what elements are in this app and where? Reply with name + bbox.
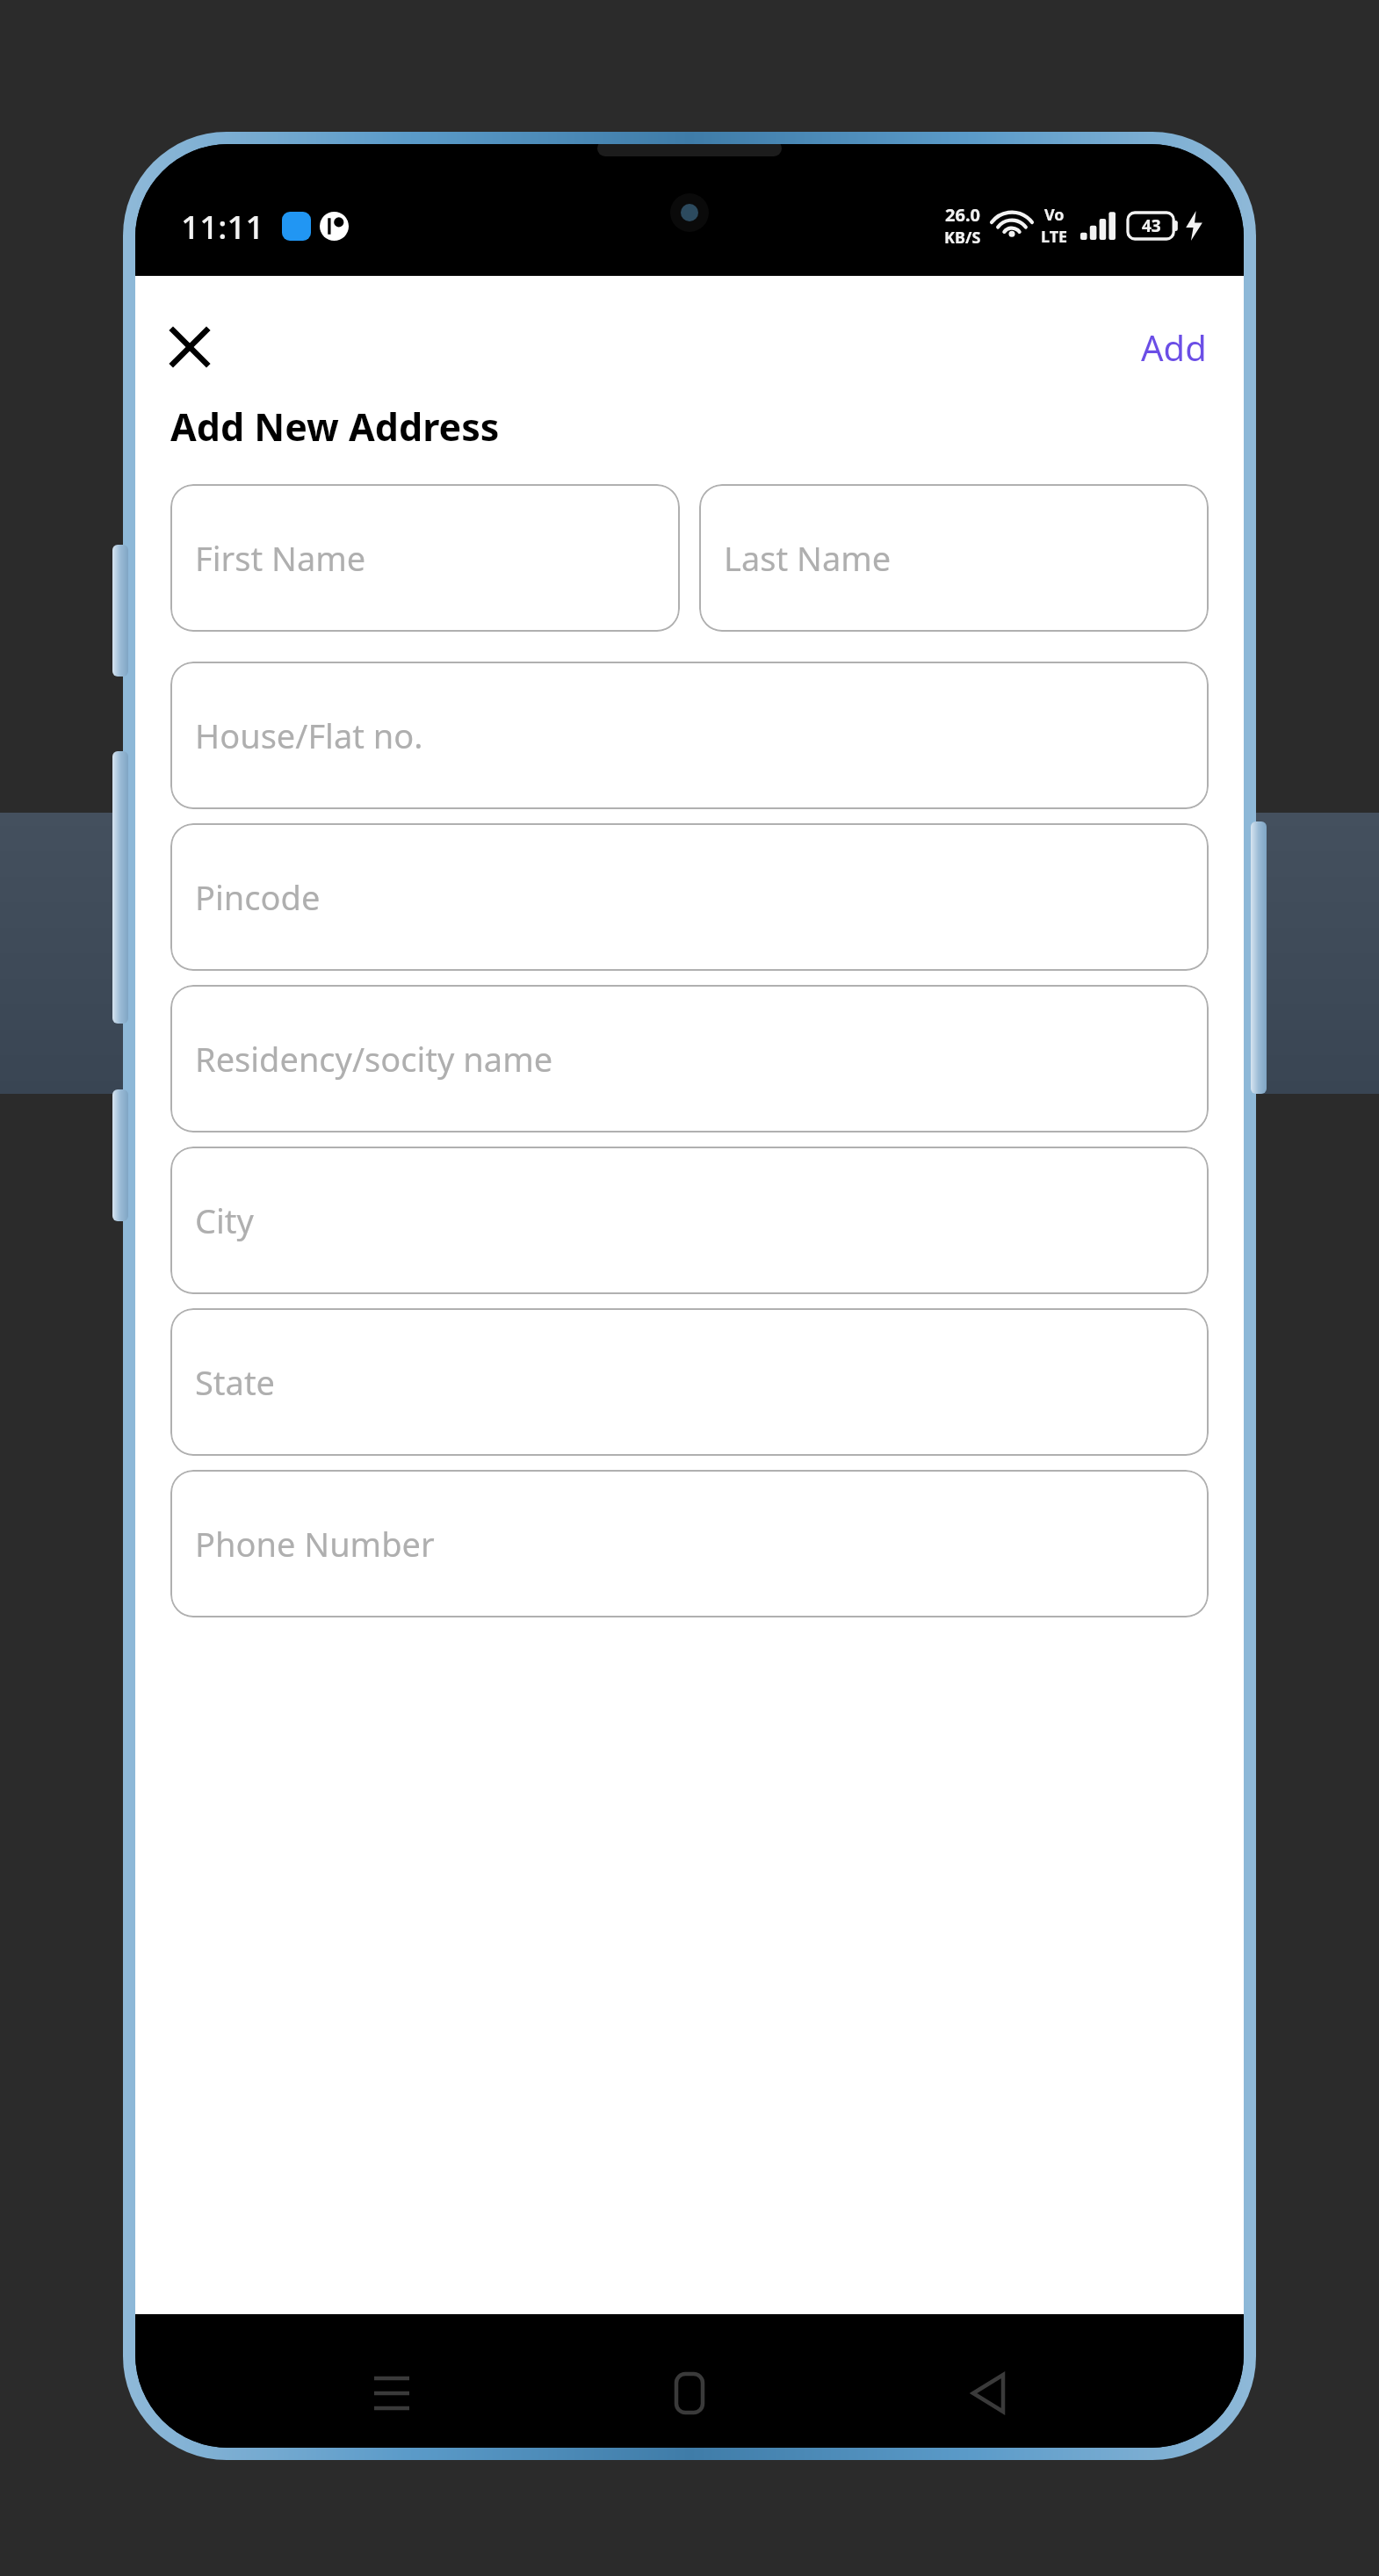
button[interactable]: Pincode (170, 823, 1209, 971)
button[interactable]: Back (946, 2351, 1030, 2435)
staticText: LTE (1041, 226, 1068, 248)
staticText: 11:11 (181, 204, 264, 248)
staticText: 26.0 (945, 203, 980, 227)
button[interactable]: City (170, 1147, 1209, 1294)
button[interactable]: House/Flat no. (170, 662, 1209, 809)
staticText: City (195, 1198, 254, 1243)
button[interactable]: First Name (170, 484, 680, 632)
staticText: 43 (1142, 214, 1161, 237)
button[interactable]: State (170, 1308, 1209, 1456)
staticText: Pincode (195, 874, 321, 920)
staticText: First Name (195, 535, 366, 581)
staticText: House/Flat no. (195, 713, 423, 758)
staticText: KB/S (944, 227, 981, 249)
staticText: Last Name (724, 535, 892, 581)
staticText: Add New Address (170, 401, 500, 452)
staticText: State (195, 1359, 276, 1405)
button[interactable]: Add (1132, 316, 1216, 378)
staticText: Vo (1044, 204, 1065, 226)
button[interactable]: Residency/socity name (170, 985, 1209, 1132)
staticText: Residency/socity name (195, 1036, 553, 1082)
staticText: Phone Number (195, 1521, 435, 1567)
button[interactable]: Home (647, 2351, 732, 2435)
staticText: Add (1141, 323, 1207, 371)
button[interactable]: Recent apps (350, 2351, 434, 2435)
button[interactable]: Close (156, 314, 223, 380)
button[interactable]: Last Name (699, 484, 1209, 632)
button[interactable]: Phone Number (170, 1470, 1209, 1617)
